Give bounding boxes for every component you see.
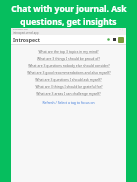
staticText: What are 3 questions I should ask myself… (35, 77, 102, 82)
button[interactable]: What are the top 3 topics in my mind? (17, 48, 120, 55)
button[interactable]: What are 3 areas I can challenge myself? (17, 90, 120, 97)
button[interactable]: What are 3 good recommendations and also… (17, 69, 120, 76)
button[interactable]: What are 3 questions nobody else should … (17, 62, 120, 69)
staticText: introspect.vercel.app (13, 31, 39, 35)
button[interactable]: What are 3 questions I should ask myself… (17, 76, 120, 83)
staticText: questions, get insights (20, 16, 117, 28)
staticText: What are 3 good recommendations and also… (27, 70, 111, 75)
button[interactable]: Profile (118, 37, 124, 43)
staticText: Chat with your journal. Ask (11, 3, 127, 15)
button[interactable]: Menu (112, 37, 117, 42)
staticText: Introspect (13, 36, 41, 43)
staticText: introspect.app (13, 28, 28, 31)
button[interactable]: Refresh / Select a tag to focus on (17, 99, 120, 106)
staticText: What are 3 questions nobody else should … (28, 63, 110, 68)
staticText: What are 3 things I should be proud of? (37, 56, 100, 61)
staticText: Refresh / Select a tag to focus on (42, 100, 95, 105)
staticText: What are 3 areas I can challenge myself? (36, 91, 101, 96)
button[interactable]: What are 3 things I should be grateful f… (17, 83, 120, 90)
staticText: What are the top 3 topics in my mind? (38, 49, 99, 54)
staticText: ⌄ ⋮ (119, 28, 124, 31)
button[interactable]: What are 3 things I should be proud of? (17, 55, 120, 62)
button[interactable]: Theme (106, 37, 111, 42)
staticText: What are 3 things I should be grateful f… (35, 84, 103, 89)
